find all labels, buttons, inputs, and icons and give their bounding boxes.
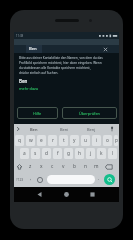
staticText: l [112, 150, 114, 157]
button[interactable] [16, 164, 23, 170]
button[interactable]: s [31, 148, 40, 159]
button[interactable]: e [37, 135, 46, 146]
staticText: o [106, 137, 109, 144]
staticText: z [29, 163, 32, 170]
staticText: t [63, 137, 65, 144]
button[interactable]: t [59, 135, 68, 146]
staticText: Ben [19, 78, 28, 84]
staticText: j [90, 150, 92, 157]
button[interactable]: Ben [14, 45, 119, 53]
button[interactable]: p [114, 135, 118, 146]
button[interactable]: u [81, 135, 90, 146]
button[interactable]: m [91, 160, 102, 173]
staticText: Ben [29, 46, 37, 52]
button[interactable] [16, 127, 20, 131]
button[interactable]: f [53, 148, 62, 159]
button[interactable]: b [69, 160, 80, 173]
staticText: d [45, 150, 48, 157]
button[interactable]: r [48, 135, 57, 146]
button[interactable]: y [70, 135, 79, 146]
button[interactable] [109, 126, 115, 132]
button[interactable] [37, 177, 43, 183]
staticText: Überprüfen [79, 111, 100, 116]
staticText: c [51, 163, 54, 170]
button[interactable]: g [64, 148, 73, 159]
staticText: v [62, 163, 65, 170]
button[interactable]: q [15, 135, 24, 146]
button[interactable]: mehr dazu [19, 86, 39, 91]
button[interactable]: , [30, 175, 32, 182]
button[interactable] [64, 192, 69, 197]
button[interactable]: h [75, 148, 84, 159]
button[interactable]: c [47, 160, 58, 173]
button[interactable]: n [80, 160, 91, 173]
button[interactable]: w [26, 135, 35, 146]
staticText: f [57, 150, 59, 157]
button[interactable]: i [92, 135, 101, 146]
staticText: q [18, 137, 21, 144]
staticText: p [115, 137, 118, 144]
staticText: b [73, 163, 76, 170]
staticText: Bitte aus deiner Kontaktliste den Namen,… [19, 56, 103, 60]
staticText: a [23, 150, 26, 157]
button[interactable]: l [108, 148, 117, 159]
button[interactable]: k [97, 148, 106, 159]
staticText: y [73, 137, 76, 144]
staticText: du stattdessen alle Kontakte speichern m… [19, 66, 91, 70]
staticText: Hilfe [33, 111, 42, 116]
button[interactable]: Hilfe [17, 107, 58, 119]
button[interactable]: o [103, 135, 112, 146]
button[interactable]: j [86, 148, 95, 159]
button[interactable] [37, 192, 42, 197]
staticText: w [29, 137, 33, 144]
staticText: u [84, 137, 87, 144]
staticText: e [40, 137, 43, 144]
button[interactable]: x [36, 160, 47, 173]
staticText: 11:38 [16, 34, 24, 38]
button[interactable]: . [98, 175, 100, 182]
button[interactable] [90, 192, 95, 197]
staticText: x [40, 163, 43, 170]
staticText: drücke einfach auf Suchen. [19, 71, 59, 75]
button[interactable]: z [25, 160, 36, 173]
button[interactable]: a [20, 148, 29, 159]
button[interactable] [47, 175, 95, 184]
staticText: h [78, 150, 81, 157]
button[interactable]: Überprüfen [62, 107, 117, 119]
staticText: n [84, 163, 87, 170]
button[interactable] [104, 174, 115, 185]
button[interactable]: v [58, 160, 69, 173]
button[interactable]: Ben [30, 127, 38, 132]
staticText: k [100, 150, 103, 157]
staticText: s [34, 150, 37, 157]
button[interactable]: d [42, 148, 51, 159]
staticText: m [94, 163, 99, 170]
button[interactable]: ?123 [16, 177, 24, 182]
button[interactable]: Benj [87, 127, 96, 132]
staticText: r [52, 137, 54, 144]
staticText: Profilbild speichern möchtest, hier oben… [19, 61, 102, 65]
button[interactable]: Beni [60, 127, 69, 132]
staticText: g [67, 150, 70, 157]
staticText: i [96, 137, 98, 144]
button[interactable] [105, 164, 113, 170]
